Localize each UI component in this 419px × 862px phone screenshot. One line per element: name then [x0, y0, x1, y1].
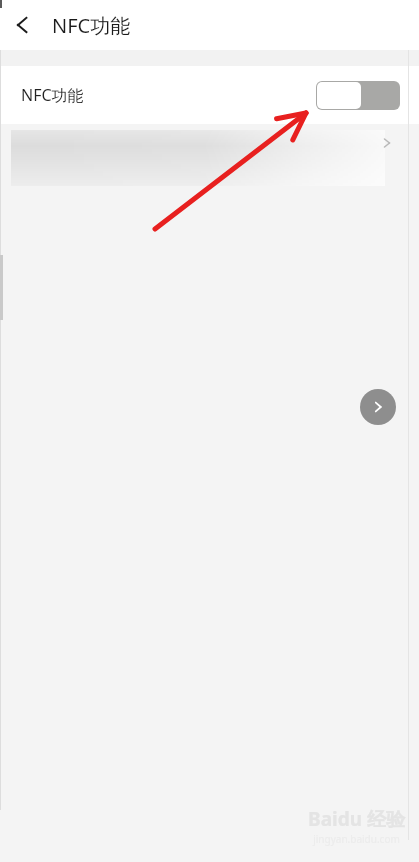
- staticText: NFC功能: [52, 12, 131, 39]
- button[interactable]: Next: [360, 389, 396, 425]
- button[interactable]: NFC toggle: [316, 81, 400, 110]
- button[interactable]: [11, 130, 385, 186]
- staticText: NFC功能: [21, 84, 84, 106]
- button[interactable]: NFC功能: [0, 66, 419, 124]
- button[interactable]: Back: [0, 1, 48, 49]
- staticText: Baidu 经验: [308, 806, 405, 832]
